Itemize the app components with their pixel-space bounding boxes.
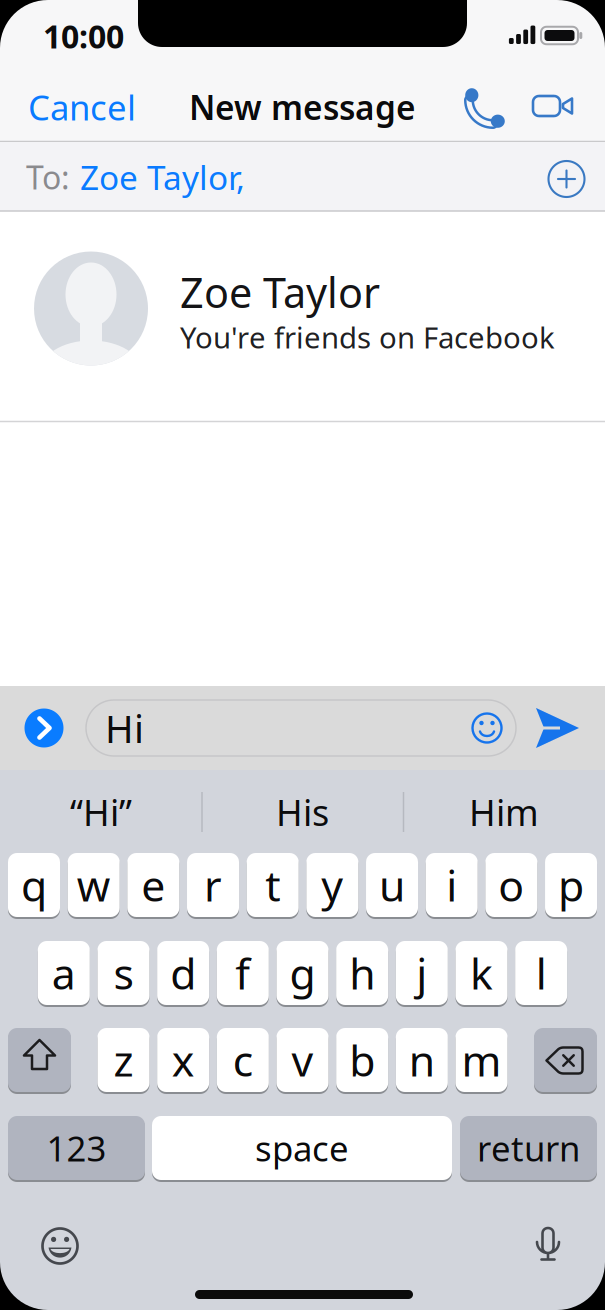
staticText: Him xyxy=(469,788,539,836)
staticText: 123 xyxy=(46,1125,106,1171)
staticText: Hi xyxy=(105,702,144,754)
staticText: You're friends on Facebook xyxy=(180,317,555,356)
button[interactable]: s xyxy=(97,940,149,1006)
button[interactable]: z xyxy=(97,1027,149,1093)
staticText: New message xyxy=(189,85,416,129)
button[interactable]: Cancel xyxy=(28,82,148,132)
staticText: z xyxy=(113,1032,133,1088)
staticText: return xyxy=(477,1125,580,1171)
button[interactable]: y xyxy=(306,852,358,918)
button[interactable] xyxy=(530,92,576,120)
staticText: 10:00 xyxy=(43,15,124,57)
button[interactable]: d xyxy=(157,940,209,1006)
staticText: To: xyxy=(26,156,70,198)
button[interactable]: b xyxy=(336,1027,388,1093)
staticText: r xyxy=(204,857,222,913)
staticText: g xyxy=(289,945,315,1001)
staticText: His xyxy=(276,788,329,836)
staticText: Zoe Taylor, xyxy=(80,155,245,199)
staticText: “Hi” xyxy=(70,788,132,836)
button[interactable]: Him xyxy=(409,777,599,847)
button[interactable] xyxy=(534,1027,597,1093)
button[interactable] xyxy=(38,1224,82,1268)
staticText: t xyxy=(265,857,280,913)
button[interactable]: return xyxy=(460,1115,597,1181)
staticText: k xyxy=(470,945,493,1001)
button[interactable]: r xyxy=(187,852,239,918)
button[interactable]: o xyxy=(485,852,537,918)
staticText: c xyxy=(233,1032,253,1088)
button[interactable] xyxy=(470,711,504,745)
button[interactable]: w xyxy=(68,852,120,918)
staticText: w xyxy=(77,857,111,913)
button[interactable]: “Hi” xyxy=(6,777,196,847)
button[interactable]: e xyxy=(127,852,179,918)
staticText: v xyxy=(291,1032,313,1088)
button[interactable] xyxy=(8,1027,71,1093)
button[interactable]: c xyxy=(217,1027,269,1093)
button[interactable]: Hi xyxy=(86,700,516,756)
button[interactable]: f xyxy=(217,940,269,1006)
button[interactable]: u xyxy=(366,852,418,918)
staticText: q xyxy=(21,857,47,913)
button[interactable] xyxy=(533,705,581,751)
staticText: x xyxy=(172,1032,195,1088)
button[interactable]: space xyxy=(152,1115,452,1181)
staticText: n xyxy=(409,1032,435,1088)
button[interactable]: l xyxy=(515,940,567,1006)
button[interactable]: Zoe Taylor xyxy=(0,212,605,421)
button[interactable]: Zoe Taylor, xyxy=(80,157,270,197)
button[interactable] xyxy=(530,1226,566,1266)
staticText: a xyxy=(52,945,76,1001)
button[interactable]: n xyxy=(396,1027,448,1093)
staticText: d xyxy=(170,945,196,1001)
button[interactable] xyxy=(24,708,64,748)
staticText: y xyxy=(321,857,343,913)
button[interactable]: q xyxy=(8,852,60,918)
staticText: u xyxy=(379,857,405,913)
button[interactable]: a xyxy=(38,940,90,1006)
button[interactable]: g xyxy=(276,940,328,1006)
button[interactable]: His xyxy=(207,777,397,847)
staticText: i xyxy=(446,857,457,913)
staticText: space xyxy=(255,1125,349,1171)
button[interactable]: k xyxy=(455,940,507,1006)
staticText: h xyxy=(349,945,375,1001)
button[interactable]: x xyxy=(157,1027,209,1093)
button[interactable]: j xyxy=(396,940,448,1006)
staticText: b xyxy=(349,1032,375,1088)
staticText: Zoe Taylor xyxy=(180,265,380,319)
staticText: o xyxy=(498,857,524,913)
staticText: p xyxy=(558,857,584,913)
button[interactable]: i xyxy=(426,852,478,918)
staticText: s xyxy=(113,945,133,1001)
staticText: j xyxy=(416,945,427,1001)
button[interactable]: 123 xyxy=(8,1115,145,1181)
staticText: Cancel xyxy=(28,84,136,130)
button[interactable]: v xyxy=(276,1027,328,1093)
button[interactable]: t xyxy=(247,852,299,918)
staticText: e xyxy=(141,857,165,913)
button[interactable]: h xyxy=(336,940,388,1006)
button[interactable]: p xyxy=(545,852,597,918)
staticText: f xyxy=(235,945,250,1001)
staticText: l xyxy=(536,945,547,1001)
button[interactable]: m xyxy=(455,1027,507,1093)
button[interactable] xyxy=(544,157,588,201)
button[interactable] xyxy=(465,85,509,129)
staticText: m xyxy=(461,1032,501,1088)
